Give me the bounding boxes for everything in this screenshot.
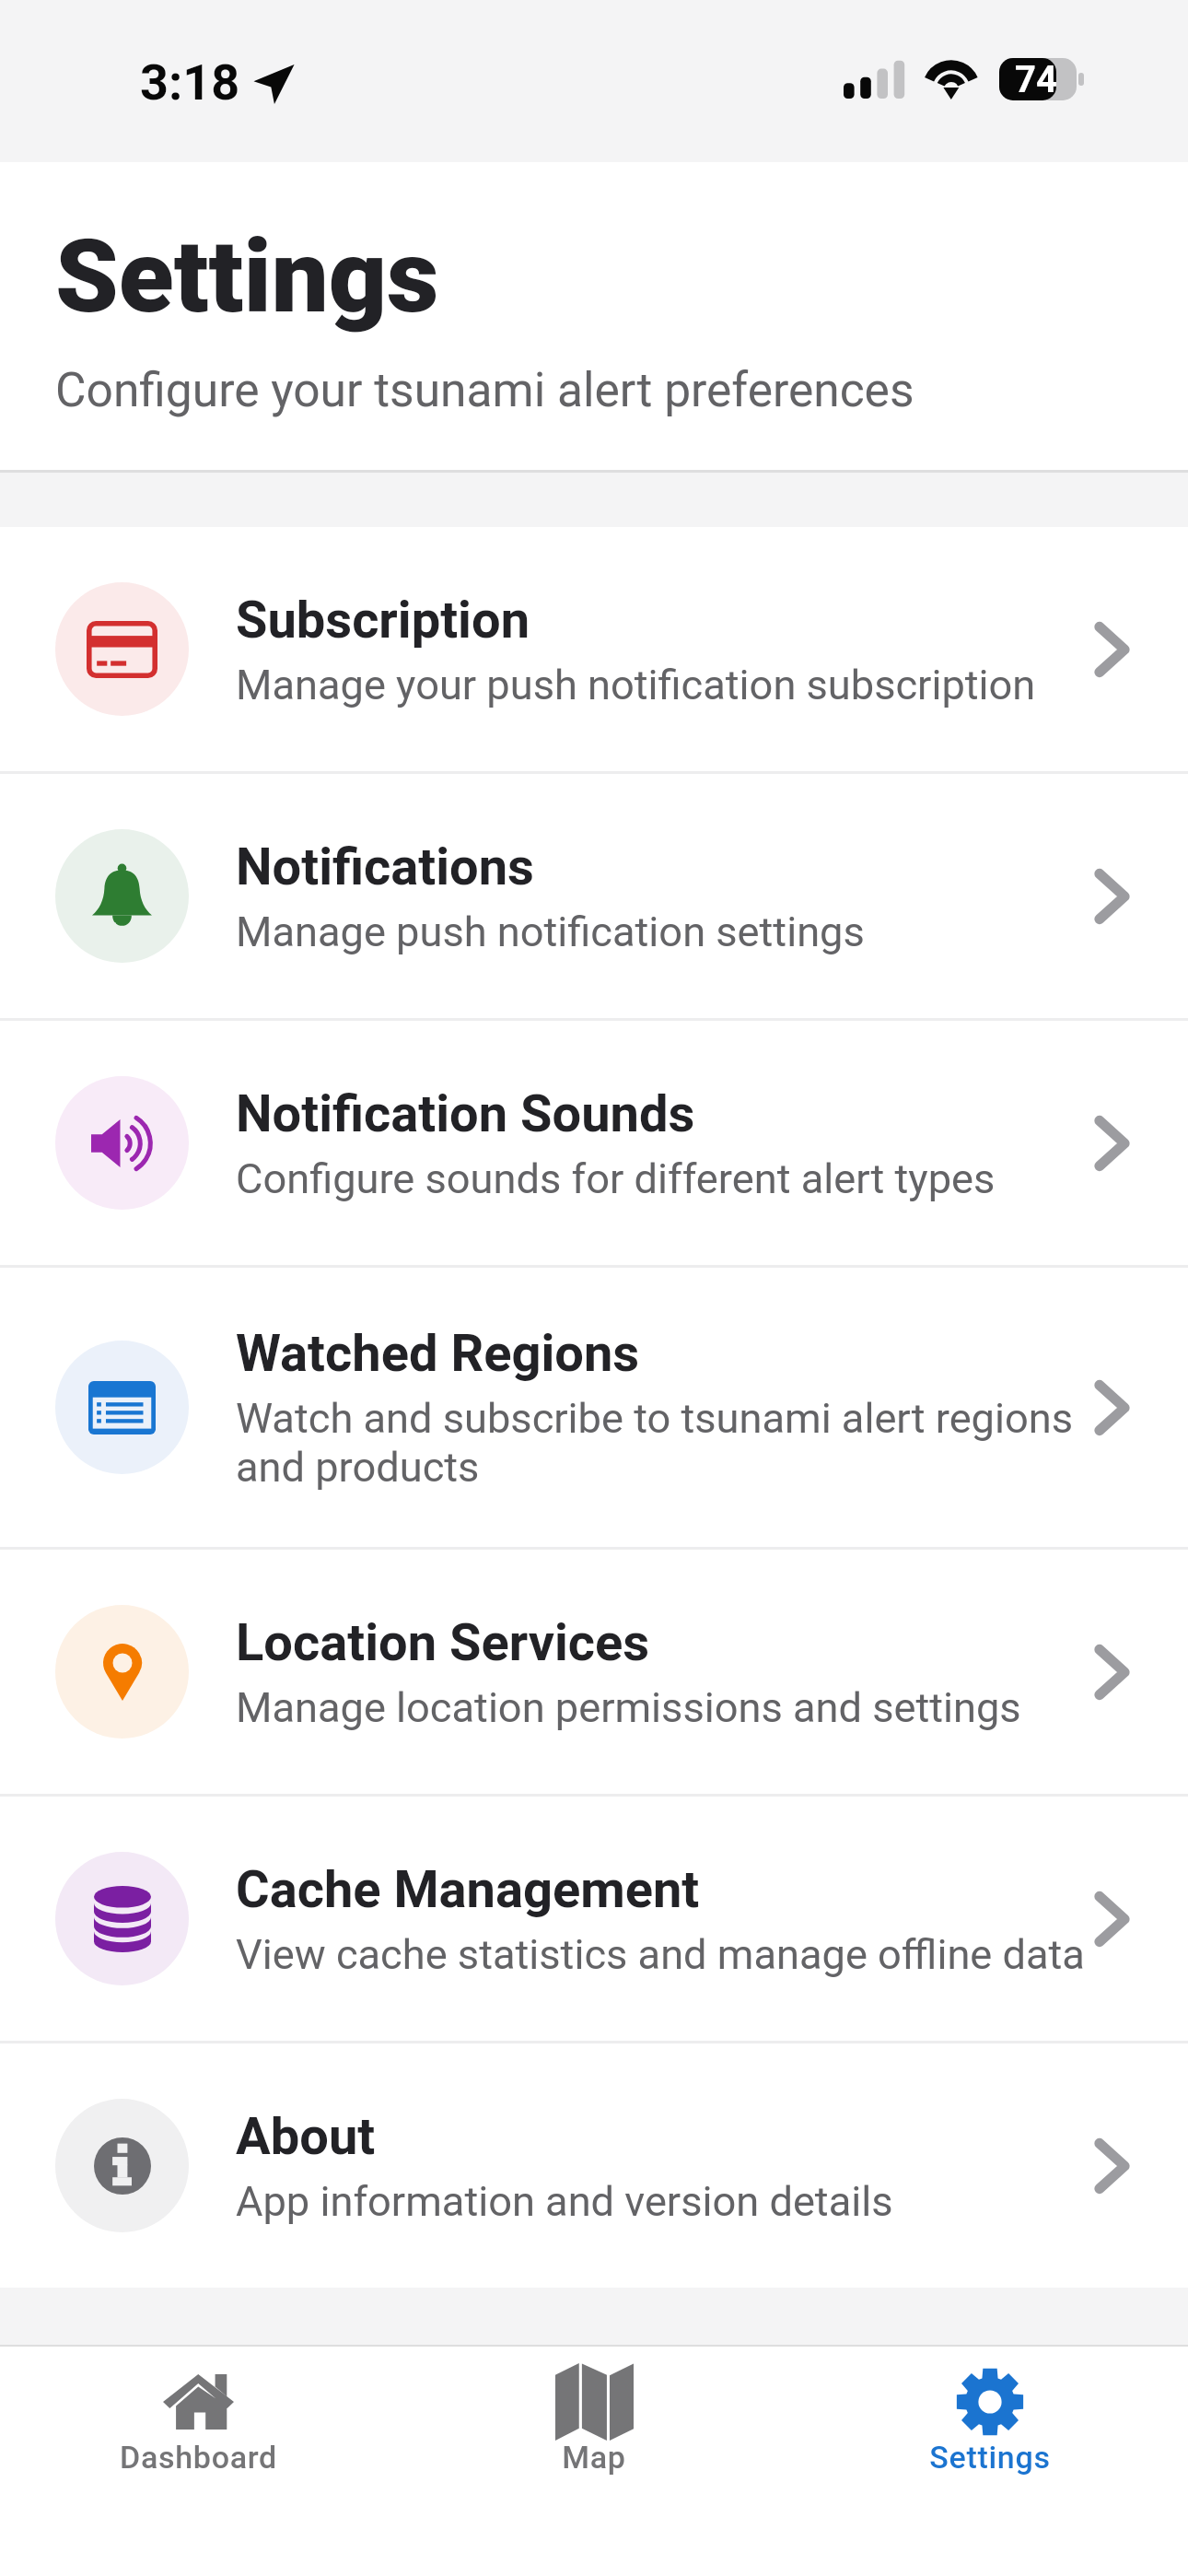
staticText: App information and version details bbox=[236, 2177, 893, 2226]
staticText: Manage push notification settings bbox=[236, 907, 865, 956]
staticText: Watch and subscribe to tsunami alert reg… bbox=[236, 1394, 1096, 1492]
button[interactable]: Location Services bbox=[0, 1550, 1188, 1794]
other: Open Location Services bbox=[1096, 1646, 1128, 1698]
staticText: View cache statistics and manage offline… bbox=[236, 1930, 1085, 1979]
other: Open Subscription bbox=[1096, 624, 1128, 675]
staticText: Notifications bbox=[236, 837, 534, 897]
button[interactable]: Settings bbox=[792, 2347, 1188, 2576]
staticText: About bbox=[236, 2106, 376, 2167]
staticText: 3:18 bbox=[140, 53, 240, 111]
other: Open Watched Regions bbox=[1096, 1382, 1128, 1434]
button[interactable]: Cache Management bbox=[0, 1797, 1188, 2041]
staticText: Watched Regions bbox=[236, 1323, 640, 1384]
staticText: Settings bbox=[55, 217, 439, 336]
staticText: Manage your push notification subscripti… bbox=[236, 661, 1036, 709]
staticText: Cache Management bbox=[236, 1859, 700, 1920]
button[interactable]: Notification Sounds bbox=[0, 1021, 1188, 1265]
staticText: Subscription bbox=[236, 590, 530, 650]
button[interactable]: Subscription bbox=[0, 527, 1188, 771]
staticText: Configure sounds for different alert typ… bbox=[236, 1154, 996, 1203]
other: Open About bbox=[1096, 2140, 1128, 2192]
other: Open Cache Management bbox=[1096, 1893, 1128, 1945]
staticText: Manage location permissions and settings bbox=[236, 1683, 1021, 1732]
other: Open Notification Sounds bbox=[1096, 1118, 1128, 1169]
staticText: Configure your tsunami alert preferences bbox=[55, 362, 914, 417]
staticText: Location Services bbox=[236, 1612, 650, 1673]
button[interactable]: About bbox=[0, 2043, 1188, 2288]
button[interactable]: Watched Regions bbox=[0, 1268, 1188, 1547]
button[interactable]: Dashboard bbox=[0, 2347, 396, 2576]
staticText: Dashboard bbox=[120, 2439, 277, 2476]
button[interactable]: Notifications bbox=[0, 774, 1188, 1018]
staticText: 74 bbox=[1015, 58, 1057, 100]
staticText: Map bbox=[562, 2439, 626, 2476]
button[interactable]: Map bbox=[396, 2347, 792, 2576]
other: Open Notifications bbox=[1096, 871, 1128, 922]
staticText: Settings bbox=[929, 2439, 1051, 2476]
staticText: Notification Sounds bbox=[236, 1083, 695, 1144]
